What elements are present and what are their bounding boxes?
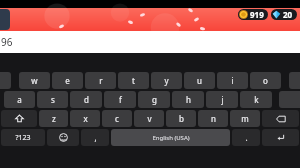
button[interactable]: o bbox=[250, 72, 281, 89]
button[interactable]: b bbox=[166, 110, 196, 127]
button[interactable]: ?123 bbox=[1, 129, 45, 146]
button[interactable]: English (USA) bbox=[111, 129, 230, 146]
staticText: b bbox=[179, 113, 184, 124]
button[interactable]: 96 bbox=[0, 31, 300, 53]
staticText: x bbox=[83, 113, 88, 124]
staticText: z bbox=[52, 113, 56, 124]
button[interactable]: y bbox=[151, 72, 182, 89]
button[interactable]: r bbox=[85, 72, 116, 89]
button[interactable]: x bbox=[70, 110, 100, 127]
staticText: m bbox=[241, 113, 249, 124]
staticText: i bbox=[231, 75, 234, 86]
staticText: k bbox=[254, 94, 259, 105]
staticText: d bbox=[84, 94, 89, 105]
staticText: v bbox=[147, 113, 152, 124]
button[interactable]: . bbox=[232, 129, 260, 146]
staticText: . bbox=[245, 132, 248, 143]
button[interactable]: , bbox=[81, 129, 109, 146]
staticText: t bbox=[132, 75, 135, 86]
staticText: r bbox=[99, 75, 103, 86]
staticText: o bbox=[263, 75, 268, 86]
button[interactable]: c bbox=[102, 110, 132, 127]
button[interactable] bbox=[289, 72, 300, 89]
staticText: English (USA) bbox=[152, 134, 190, 142]
button[interactable]: v bbox=[134, 110, 164, 127]
button[interactable]: m bbox=[230, 110, 260, 127]
button[interactable]: u bbox=[184, 72, 215, 89]
button[interactable] bbox=[1, 110, 37, 127]
button[interactable]: w bbox=[19, 72, 50, 89]
staticText: 919 bbox=[250, 9, 264, 20]
button[interactable]: Menu bbox=[0, 9, 10, 30]
button[interactable]: n bbox=[198, 110, 228, 127]
button[interactable]: 919 bbox=[239, 9, 264, 20]
button[interactable]: g bbox=[138, 91, 170, 108]
button[interactable] bbox=[262, 110, 299, 127]
staticText: ?123 bbox=[15, 133, 31, 143]
staticText: e bbox=[65, 75, 70, 86]
button[interactable]: t bbox=[118, 72, 149, 89]
button[interactable]: a bbox=[4, 91, 35, 108]
button[interactable]: i bbox=[217, 72, 248, 89]
staticText: h bbox=[186, 94, 191, 105]
staticText: 20 bbox=[283, 9, 293, 20]
staticText: a bbox=[17, 94, 22, 105]
button[interactable] bbox=[47, 129, 79, 146]
button[interactable]: j bbox=[206, 91, 238, 108]
staticText: w bbox=[31, 75, 38, 86]
button[interactable]: h bbox=[172, 91, 204, 108]
staticText: y bbox=[164, 75, 169, 86]
staticText: u bbox=[197, 75, 202, 86]
button[interactable]: f bbox=[104, 91, 136, 108]
staticText: n bbox=[211, 113, 216, 124]
staticText: j bbox=[221, 94, 224, 105]
staticText: f bbox=[119, 94, 122, 105]
staticText: s bbox=[51, 94, 55, 105]
staticText: , bbox=[94, 132, 97, 143]
button[interactable]: d bbox=[70, 91, 102, 108]
staticText: 96 bbox=[1, 35, 13, 49]
staticText: c bbox=[115, 113, 119, 124]
button[interactable]: k bbox=[240, 91, 272, 108]
button[interactable] bbox=[262, 129, 299, 146]
button[interactable] bbox=[0, 72, 11, 89]
button[interactable]: e bbox=[52, 72, 83, 89]
button[interactable]: z bbox=[39, 110, 68, 127]
button[interactable]: s bbox=[37, 91, 68, 108]
staticText: g bbox=[152, 94, 157, 105]
button[interactable]: 20 bbox=[272, 9, 293, 20]
